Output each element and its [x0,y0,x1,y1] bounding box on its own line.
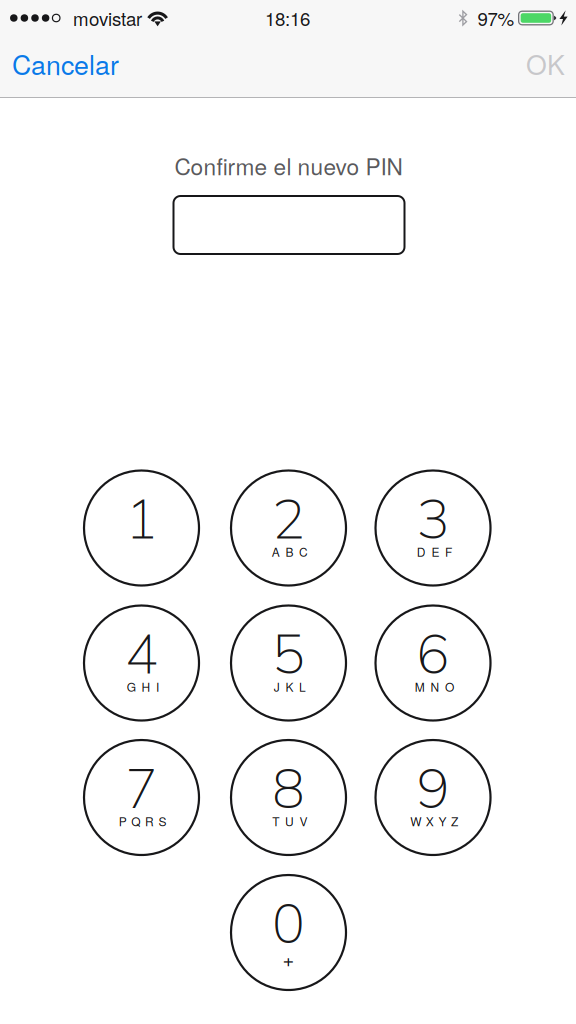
staticText: GHI [127,678,159,695]
button[interactable]: 8 [231,740,346,855]
staticText: ABC [272,543,308,560]
staticText: 4 [125,618,158,687]
staticText: 7 [125,753,158,822]
staticText: 6 [416,618,449,687]
staticText: 18:16 [265,5,310,31]
staticText: 5 [272,618,305,687]
staticText: 97% [477,5,514,31]
staticText: 1 [125,483,158,552]
button[interactable]: 0 [231,875,346,990]
staticText: JKL [274,678,306,695]
button[interactable]: 9 [375,740,490,855]
staticText: + [282,944,294,973]
staticText: 9 [416,753,449,822]
staticText: WXYZ [410,812,458,830]
staticText: MNO [415,678,454,695]
staticText: Cancelar [12,44,119,83]
staticText: movistar [73,5,142,31]
button[interactable]: 2 [231,470,346,585]
button[interactable]: Cancelar [0,36,135,97]
staticText: 8 [272,753,305,822]
staticText: DEF [417,543,452,560]
staticText: 0 [272,888,305,957]
staticText: PQRS [119,812,167,830]
staticText: 3 [416,483,449,552]
button[interactable]: 4 [84,605,199,720]
staticText: Confirme el nuevo PIN [174,149,402,182]
button[interactable]: 7 [84,740,199,855]
button[interactable]: OK [510,36,576,97]
button[interactable]: 6 [375,605,490,720]
button[interactable]: 5 [231,605,346,720]
staticText: OK [526,44,565,83]
button[interactable]: 3 [375,470,490,585]
button[interactable]: 1 [84,470,199,585]
staticText: TUV [272,812,307,830]
staticText: 2 [272,483,305,552]
